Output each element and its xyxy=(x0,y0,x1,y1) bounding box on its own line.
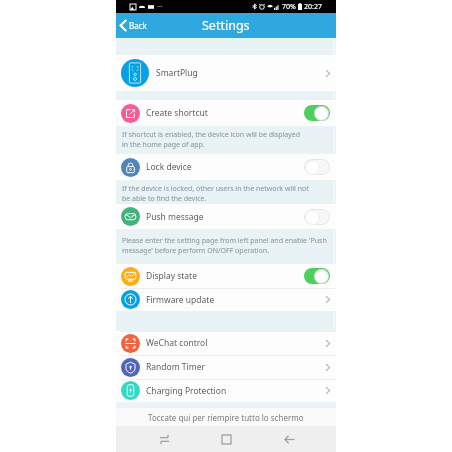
button[interactable]: Switch off xyxy=(304,209,330,225)
button[interactable]: Back xyxy=(274,426,304,452)
staticText: Display state xyxy=(146,270,197,282)
staticText: Settings xyxy=(202,17,250,34)
staticText: If the device is locked, other users in … xyxy=(122,184,309,204)
button[interactable]: Create shortcut xyxy=(116,100,336,126)
staticText: Lock device xyxy=(146,161,192,173)
button[interactable]: Charging Protection xyxy=(116,379,336,402)
staticText: WeChat control xyxy=(146,337,208,349)
button[interactable]: SmartPlug xyxy=(116,55,336,91)
staticText: Firmware update xyxy=(146,294,215,306)
button[interactable]: Random Timer xyxy=(116,355,336,379)
button[interactable]: Switch on xyxy=(304,268,330,284)
staticText: Charging Protection xyxy=(146,385,227,397)
staticText: Push message xyxy=(146,211,204,223)
staticText: 20:27 xyxy=(304,2,322,12)
button[interactable]: Switch off xyxy=(304,159,330,175)
staticText: SmartPlug xyxy=(156,67,198,79)
button[interactable]: Lock device xyxy=(116,154,336,180)
button[interactable]: Switch on xyxy=(304,105,330,121)
staticText: Random Timer xyxy=(146,361,206,373)
staticText: If shortcut is enabled, the device icon … xyxy=(122,130,301,150)
button[interactable]: Back xyxy=(116,13,153,38)
staticText: ··· xyxy=(157,2,163,12)
staticText: 70% xyxy=(282,2,296,12)
button[interactable]: Recent apps xyxy=(149,426,179,452)
staticText: Create shortcut xyxy=(146,107,208,119)
staticText: Back xyxy=(129,20,147,31)
button[interactable]: WeChat control xyxy=(116,331,336,355)
button[interactable]: Firmware update xyxy=(116,288,336,311)
button[interactable]: Push message xyxy=(116,204,336,229)
staticText: Please enter the setting page from left … xyxy=(122,236,327,256)
staticText: Toccate qui per riempire tutto lo scherm… xyxy=(148,412,304,423)
button[interactable]: Home xyxy=(211,426,241,452)
button[interactable]: Display state xyxy=(116,264,336,288)
